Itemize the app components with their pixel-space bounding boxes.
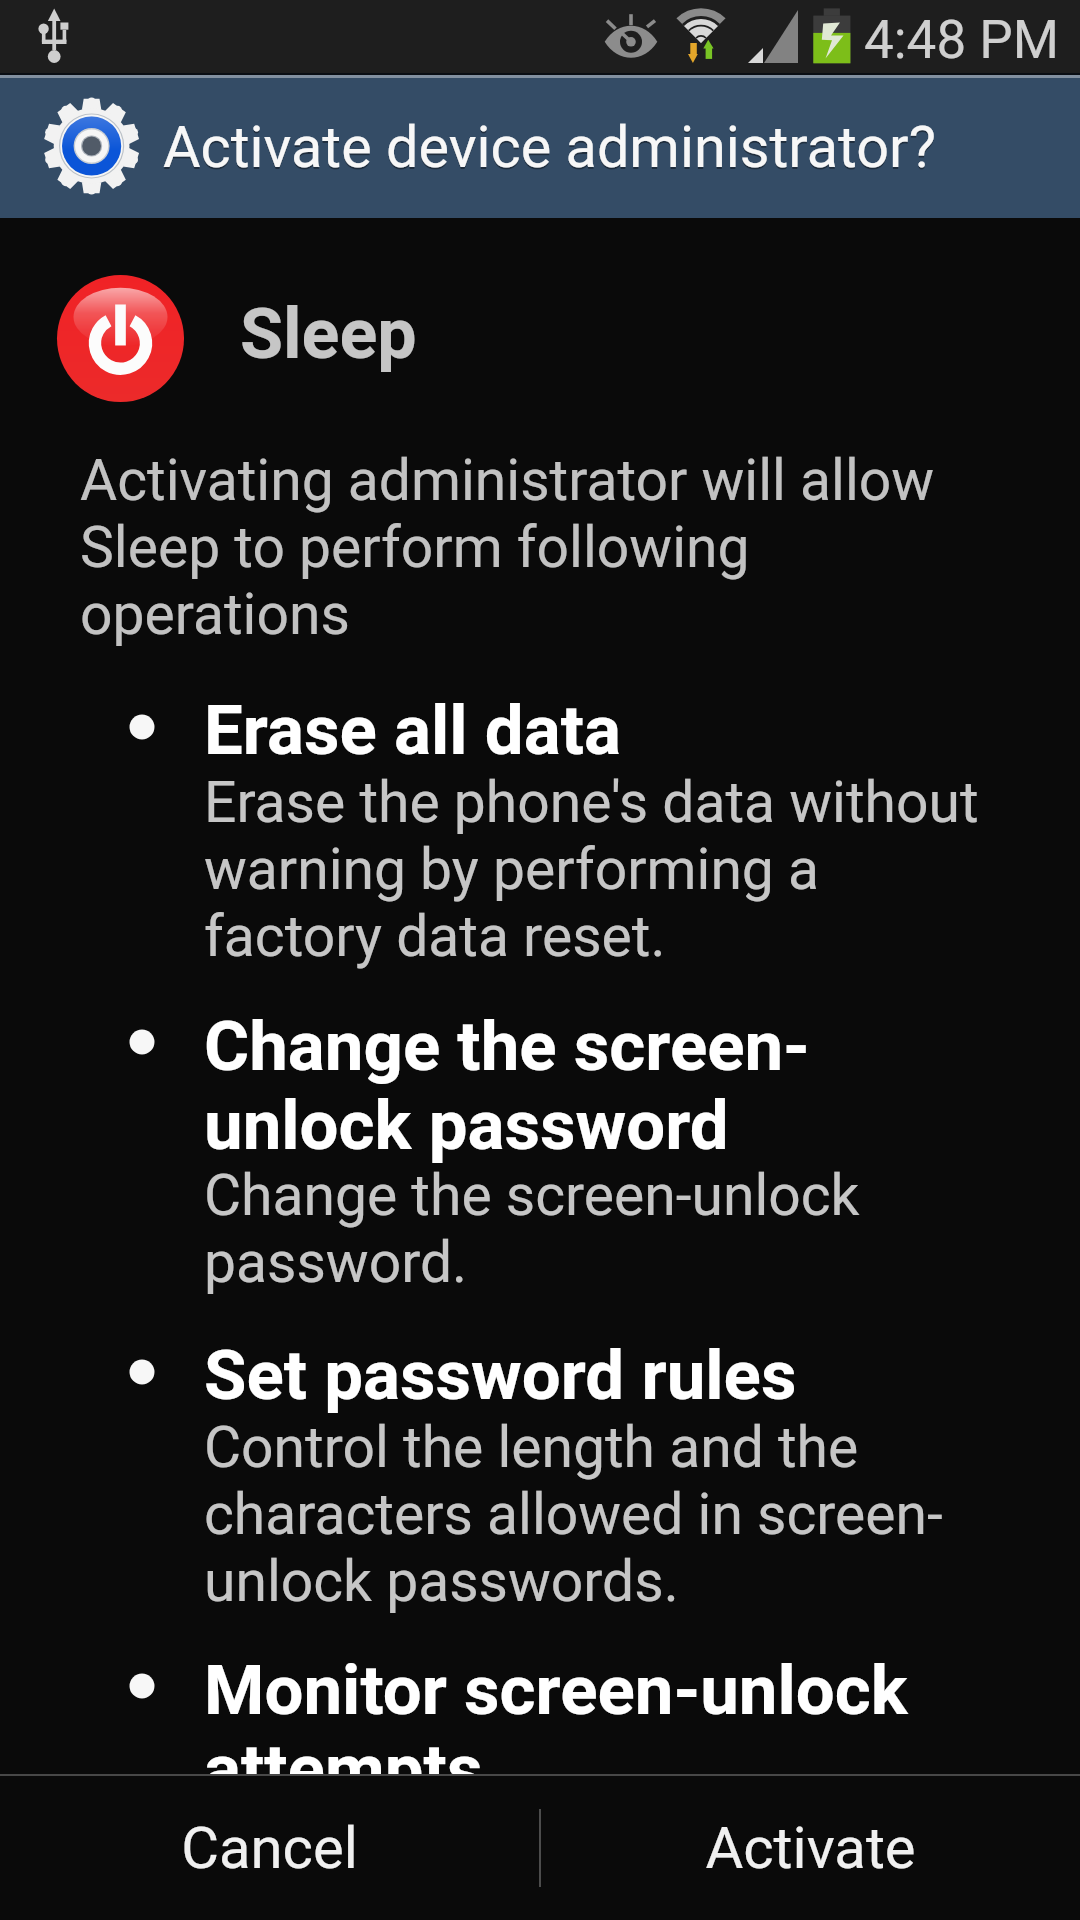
other: Settings bbox=[42, 96, 142, 196]
button[interactable]: Activate bbox=[541, 1776, 1080, 1920]
staticText: Activating administrator will allow Slee… bbox=[80, 447, 950, 648]
staticText: Control the length and the characters al… bbox=[204, 1414, 994, 1615]
staticText: Change the screen-unlock password bbox=[204, 1007, 994, 1165]
staticText: 4:48 PM bbox=[864, 14, 1060, 70]
other: Sleep app icon bbox=[57, 275, 184, 402]
staticText: Activate device administrator? bbox=[163, 120, 936, 182]
button[interactable]: Cancel bbox=[0, 1776, 539, 1920]
other: Wi-Fi signal bbox=[666, 4, 724, 66]
staticText: Erase the phone's data without warning b… bbox=[204, 769, 994, 970]
staticText: Cancel bbox=[181, 1814, 358, 1882]
staticText: Erase all data bbox=[204, 691, 994, 770]
staticText: Set password rules bbox=[204, 1336, 994, 1415]
staticText: Change the screen-unlock password. bbox=[204, 1162, 994, 1296]
other: Battery charging bbox=[809, 4, 857, 68]
staticText: Sleep bbox=[240, 295, 417, 375]
staticText: Monitor screen-unlock attempts bbox=[204, 1651, 994, 1809]
other: Mobile signal strength bbox=[744, 4, 806, 68]
other: USB connected bbox=[36, 4, 76, 66]
staticText: Activate bbox=[705, 1814, 916, 1882]
staticText: Activate device administrator? bbox=[163, 118, 936, 180]
other: Smart stay bbox=[600, 8, 664, 64]
